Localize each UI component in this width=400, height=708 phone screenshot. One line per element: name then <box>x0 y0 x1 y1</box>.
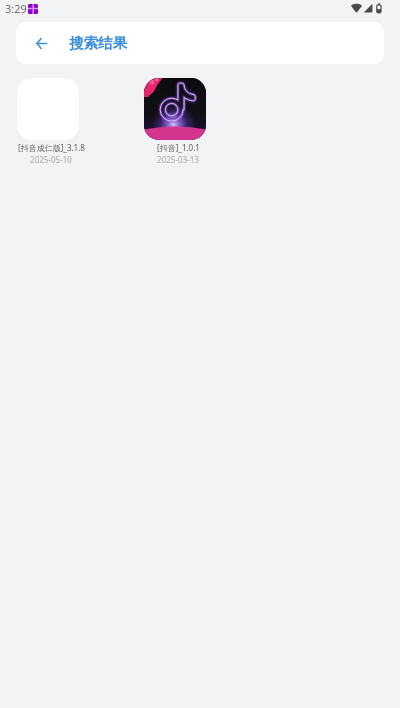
staticText: 3:29 <box>5 1 27 16</box>
staticText: [抖音]_1.0.1 <box>157 142 200 153</box>
staticText: 搜索结果 <box>69 34 127 52</box>
button[interactable]: Back <box>20 22 62 64</box>
staticText: 2025-03-13 <box>157 154 199 165</box>
button[interactable]: [抖音成仁版]_3.1.8 <box>0 78 103 165</box>
staticText: 2025-05-10 <box>30 154 72 165</box>
staticText: [抖音成仁版]_3.1.8 <box>18 142 85 153</box>
button[interactable]: [抖音]_1.0.1 <box>120 78 230 165</box>
